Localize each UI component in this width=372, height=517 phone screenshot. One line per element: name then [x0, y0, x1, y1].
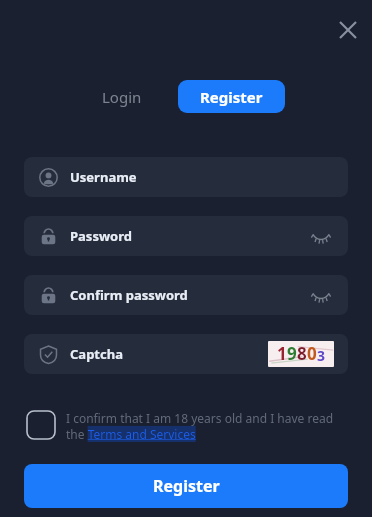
- button[interactable]: Confirm password: [24, 275, 348, 315]
- button[interactable]: Toggle password visibility: [308, 223, 334, 249]
- staticText: 1: [277, 342, 287, 365]
- button[interactable]: Password: [24, 216, 348, 256]
- staticText: Register: [153, 475, 220, 497]
- button[interactable]: Refresh captcha: [268, 341, 334, 367]
- staticText: I confirm that I am 18 years old and I h…: [66, 410, 348, 442]
- staticText: Username: [70, 168, 137, 186]
- button[interactable]: Register: [24, 464, 348, 508]
- staticText: Password: [70, 227, 132, 245]
- staticText: 3: [317, 346, 326, 365]
- staticText: 0: [307, 342, 317, 365]
- button[interactable]: Username: [24, 157, 348, 197]
- staticText: 9: [287, 342, 297, 365]
- button[interactable]: Confirm age checkbox: [24, 408, 58, 442]
- button[interactable]: Close: [330, 12, 366, 48]
- staticText: 8: [297, 342, 307, 365]
- staticText: Register: [200, 87, 263, 107]
- button[interactable]: Captcha: [24, 334, 348, 374]
- button[interactable]: Register: [178, 80, 285, 113]
- button[interactable]: Login: [88, 81, 156, 113]
- staticText: Confirm password: [70, 286, 188, 304]
- staticText: Captcha: [70, 345, 123, 363]
- button[interactable]: Toggle password visibility: [308, 282, 334, 308]
- staticText: Login: [102, 87, 142, 107]
